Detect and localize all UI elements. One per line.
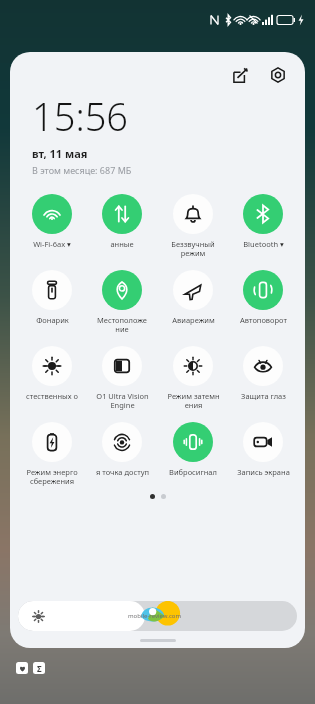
button[interactable]: Авиарежим	[159, 268, 227, 327]
button[interactable]: Местоположе ние	[88, 268, 156, 336]
staticText: Wi-Fi-6ax ▾	[33, 239, 71, 249]
staticText: Σ	[37, 663, 42, 674]
button[interactable]: Запись экрана	[229, 420, 297, 479]
staticText: Беззвучный режим	[171, 239, 215, 258]
staticText: Автоповорот	[240, 315, 287, 325]
button[interactable]: O1 Ultra Vision Engine	[88, 344, 156, 412]
staticText: Bluetooth ▾	[243, 239, 284, 249]
staticText: я точка доступ	[96, 467, 149, 477]
staticText: анные	[110, 239, 134, 249]
staticText: Защита глаз	[241, 391, 286, 401]
button[interactable]: Беззвучный режим	[159, 192, 227, 260]
button[interactable]: Фонарик	[18, 268, 86, 327]
button[interactable]: Settings	[267, 64, 289, 86]
staticText: В этом месяце: 687 МБ	[32, 164, 132, 176]
staticText: Запись экрана	[237, 467, 290, 477]
button[interactable]: я точка доступ	[88, 420, 156, 479]
button[interactable]: Защита глаз	[229, 344, 297, 403]
button[interactable]: Edit tiles	[229, 64, 251, 86]
staticText: стественных о	[26, 391, 78, 401]
staticText: вт, 11 мая	[32, 146, 88, 161]
staticText: 15:56	[32, 90, 129, 142]
button[interactable]: Автоповорот	[229, 268, 297, 327]
staticText: Авиарежим	[172, 315, 215, 325]
staticText: Местоположе ние	[97, 315, 147, 334]
button[interactable]: Wi-Fi-6ax ▾	[18, 192, 86, 251]
button[interactable]: Bluetooth ▾	[229, 192, 297, 251]
button[interactable]: стественных о	[18, 344, 86, 403]
staticText: Режим затемн ения	[167, 391, 220, 410]
button[interactable]: Режим затемн ения	[159, 344, 227, 412]
staticText: Вибросигнал	[169, 467, 217, 477]
button[interactable]: Вибросигнал	[159, 420, 227, 479]
staticText: mobile-review.com	[128, 612, 182, 620]
staticText: O1 Ultra Vision Engine	[96, 391, 149, 410]
staticText: Режим энерго сбережения	[26, 467, 78, 486]
button[interactable]: Режим энерго сбережения	[18, 420, 86, 488]
button[interactable]: анные	[88, 192, 156, 251]
staticText: Фонарик	[36, 315, 69, 325]
button[interactable]: Brightness	[18, 601, 297, 631]
